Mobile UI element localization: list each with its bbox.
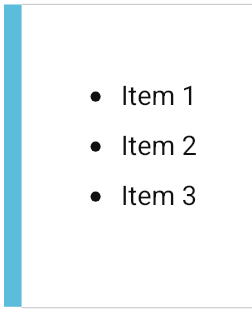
staticText: Item 2 (121, 130, 198, 162)
staticText: Item 3 (121, 180, 198, 212)
staticText: Item 1 (121, 80, 198, 112)
button[interactable]: Item 3 (0, 171, 252, 221)
button[interactable]: Item 2 (0, 121, 252, 171)
button[interactable]: Item 1 (0, 71, 252, 121)
